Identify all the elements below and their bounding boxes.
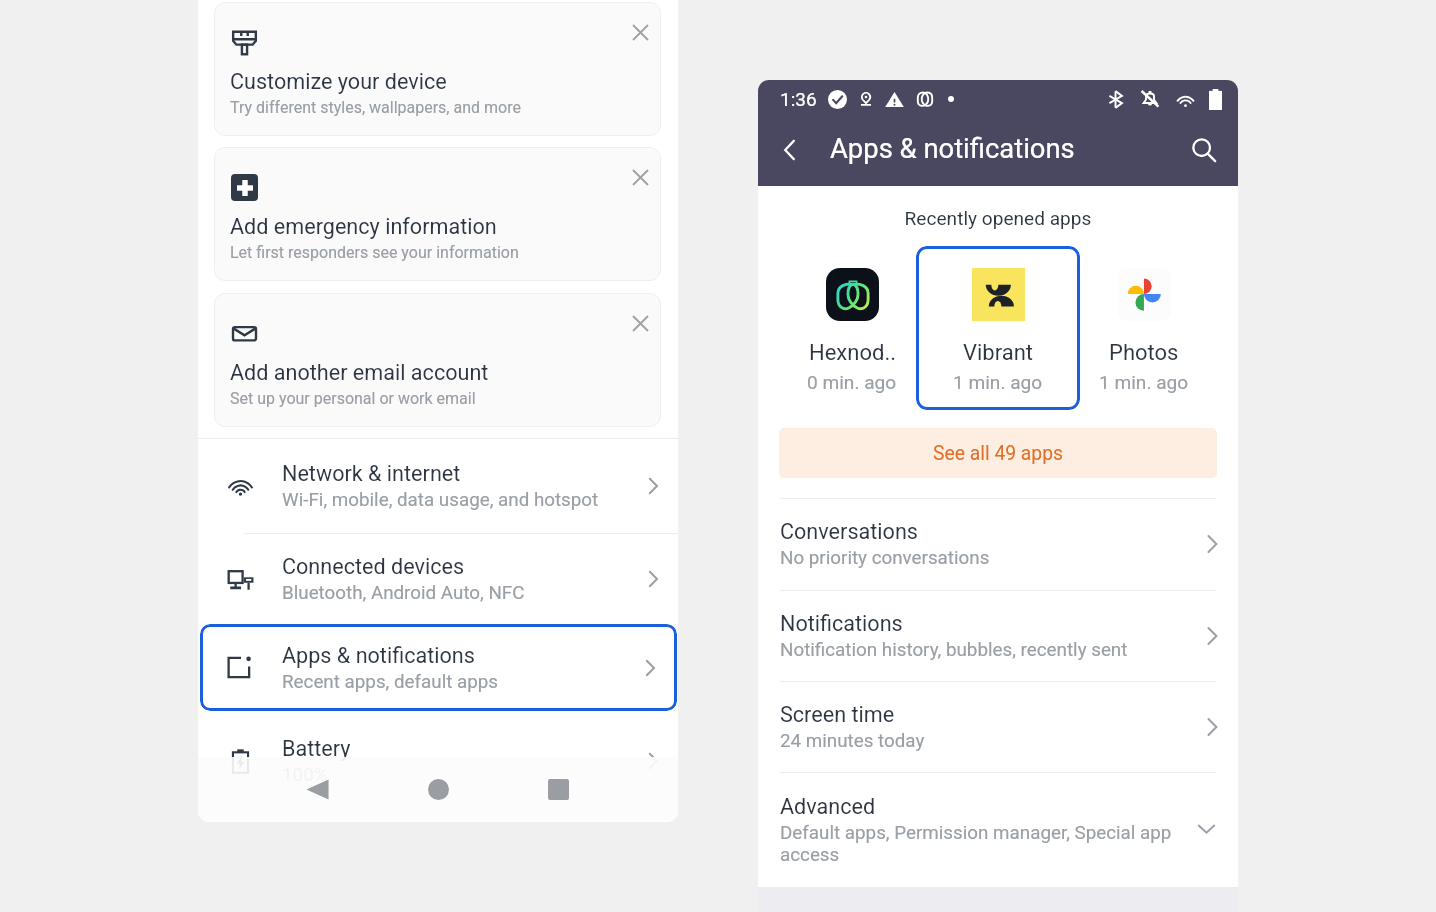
button[interactable]: Back — [295, 767, 339, 811]
button[interactable]: Hexnod.. — [770, 246, 934, 410]
staticText: Recent apps, default apps — [282, 671, 499, 693]
button[interactable]: Apps & notifications — [200, 624, 677, 711]
staticText: Apps & notifications — [282, 643, 475, 668]
staticText: 100% — [282, 764, 328, 786]
button[interactable]: Add another email account — [214, 293, 661, 427]
staticText: 24 minutes today — [780, 730, 925, 752]
staticText: Screen time — [780, 702, 895, 727]
button[interactable]: Conversations — [758, 498, 1238, 590]
button[interactable]: Photos — [1062, 246, 1226, 410]
button[interactable]: Battery — [198, 716, 678, 806]
staticText: See all 49 apps — [933, 442, 1063, 465]
staticText: Set up your personal or work email — [230, 389, 476, 408]
staticText: Photos — [1109, 340, 1179, 366]
button[interactable]: Vibrant — [916, 246, 1080, 410]
staticText: Add emergency information — [230, 214, 497, 239]
button[interactable]: Network & internet — [198, 439, 678, 533]
button[interactable]: See all 49 apps — [779, 428, 1217, 478]
button[interactable]: Connected devices — [198, 534, 678, 624]
button[interactable]: Dismiss — [625, 308, 655, 338]
staticText: 1:36 — [780, 88, 817, 110]
staticText: Bluetooth, Android Auto, NFC — [282, 582, 525, 604]
staticText: 1 min. ago — [953, 371, 1043, 393]
button[interactable]: Search — [1180, 126, 1228, 174]
staticText: Recently opened apps — [758, 207, 1238, 229]
staticText: Hexnod.. — [809, 340, 896, 366]
staticText: Apps & notifications — [830, 133, 1075, 165]
button[interactable]: Advanced — [758, 772, 1238, 887]
button[interactable]: Home — [416, 767, 460, 811]
button[interactable]: Dismiss — [625, 17, 655, 47]
staticText: Connected devices — [282, 554, 465, 579]
staticText: Let first responders see your informatio… — [230, 243, 519, 262]
staticText: Network & internet — [282, 461, 461, 486]
staticText: Notifications — [780, 611, 903, 636]
staticText: 0 min. ago — [807, 371, 897, 393]
staticText: Customize your device — [230, 69, 447, 94]
staticText: Try different styles, wallpapers, and mo… — [230, 98, 521, 117]
staticText: Conversations — [780, 519, 918, 544]
button[interactable]: Back — [766, 126, 814, 174]
staticText: Vibrant — [963, 340, 1034, 366]
staticText: Notification history, bubbles, recently … — [780, 639, 1128, 661]
staticText: Add another email account — [230, 360, 489, 385]
button[interactable]: Notifications — [758, 590, 1238, 681]
button[interactable]: Recent apps — [536, 767, 580, 811]
staticText: Advanced — [780, 794, 876, 819]
staticText: 1 min. ago — [1099, 371, 1189, 393]
staticText: Wi-Fi, mobile, data usage, and hotspot — [282, 489, 599, 511]
button[interactable]: Screen time — [758, 681, 1238, 772]
button[interactable]: Add emergency information — [214, 147, 661, 281]
button[interactable]: Dismiss — [625, 162, 655, 192]
staticText: Battery — [282, 736, 351, 761]
button[interactable]: Customize your device — [214, 2, 661, 136]
staticText: No priority conversations — [780, 547, 990, 569]
staticText: Default apps, Permission manager, Specia… — [780, 822, 1176, 866]
